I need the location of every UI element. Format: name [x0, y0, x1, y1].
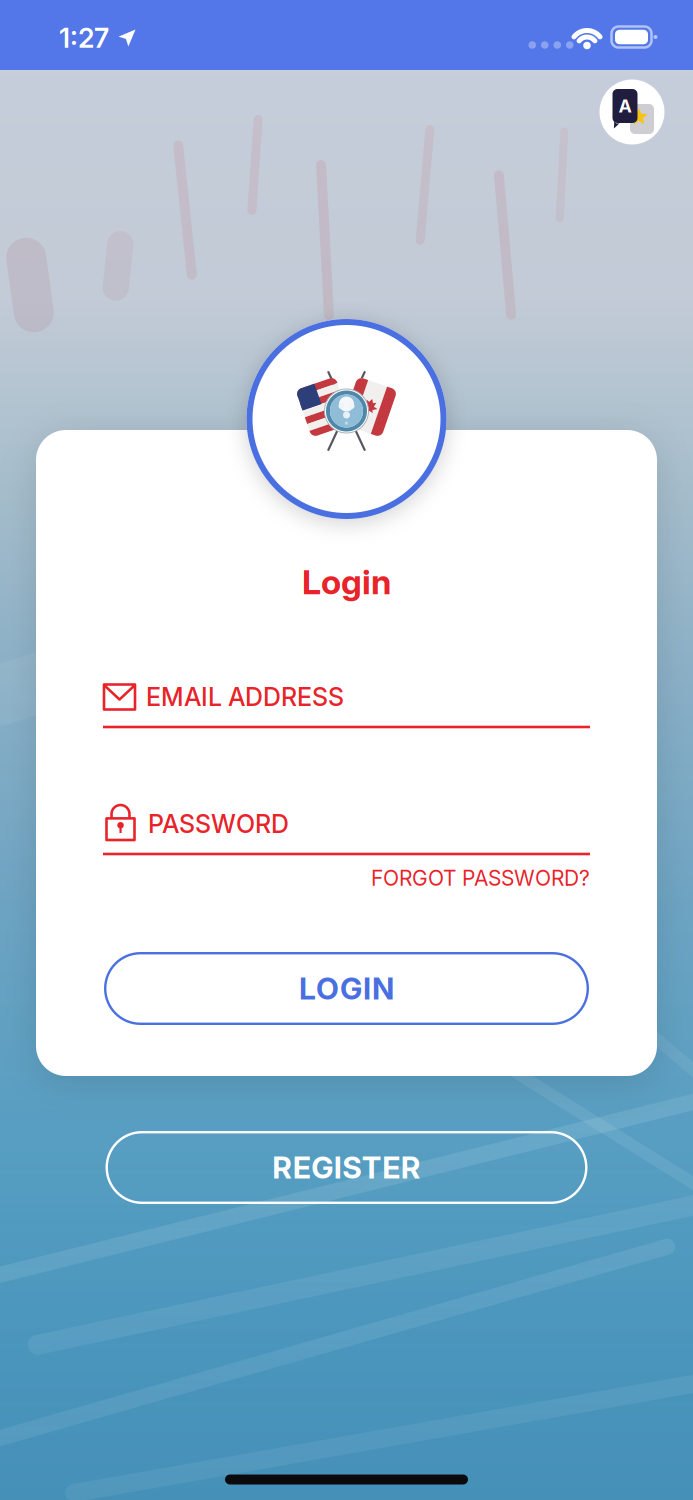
staticText: REGISTER [272, 1149, 421, 1186]
staticText: A [618, 95, 631, 117]
button[interactable]: Email address [103, 678, 590, 734]
staticText: Login [302, 561, 391, 602]
button[interactable]: REGISTER [105, 1131, 587, 1204]
button[interactable]: LOGIN [104, 952, 589, 1025]
staticText: 1:27 [59, 22, 109, 54]
button[interactable]: Change language [599, 79, 664, 144]
staticText: LOGIN [299, 970, 394, 1007]
button[interactable]: FORGOT PASSWORD? [103, 865, 590, 891]
button[interactable]: Password [103, 796, 590, 858]
staticText: EMAIL ADDRESS [146, 682, 344, 712]
staticText: PASSWORD [148, 809, 289, 839]
staticText: FORGOT PASSWORD? [371, 865, 590, 891]
